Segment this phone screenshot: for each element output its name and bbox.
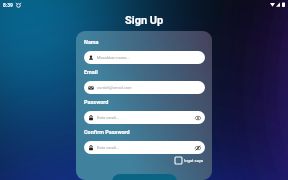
button[interactable]: Kata sandi... — [84, 111, 205, 124]
button[interactable]: Masukkan nama... — [84, 51, 205, 64]
button[interactable]: Daftar — [112, 174, 177, 180]
staticText: Masukkan nama... — [97, 55, 130, 60]
staticText: Kata sandi... — [97, 115, 120, 120]
staticText: Confirm Password — [84, 129, 130, 135]
staticText: Email — [84, 69, 98, 75]
staticText: Sign Up — [125, 14, 164, 27]
staticText: 8:39 — [3, 2, 13, 8]
staticText: contoh@email.com — [97, 85, 132, 90]
button[interactable]: Ingat saya — [175, 156, 204, 165]
staticText: Kata sandi... — [97, 145, 120, 150]
button[interactable]: Toggle password visibility — [195, 145, 201, 151]
staticText: Nama — [84, 39, 99, 45]
button[interactable]: Kata sandi... — [84, 141, 205, 154]
staticText: Password — [84, 99, 109, 105]
staticText: Ingat saya — [184, 158, 204, 163]
button[interactable]: contoh@email.com — [84, 81, 205, 94]
button[interactable]: Toggle password visibility — [195, 115, 201, 121]
